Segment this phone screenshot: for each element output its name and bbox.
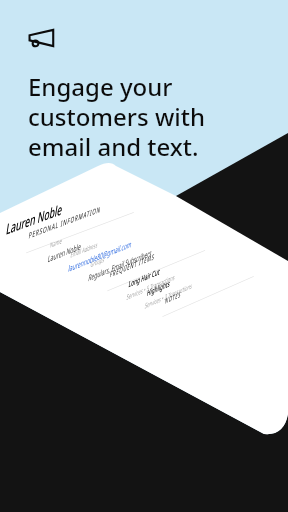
staticText: PERSONAL INFORMATION: [28, 203, 102, 241]
button[interactable]: PERSONAL INFORMATION: [26, 190, 137, 253]
staticText: Groups: [90, 254, 105, 269]
staticText: Lauren Noble: [47, 240, 82, 265]
staticText: Lauren Noble: [5, 199, 64, 239]
button[interactable]: Lauren Noble: [5, 179, 118, 239]
staticText: Email Address: [70, 239, 98, 260]
staticText: Name: [49, 235, 63, 250]
button[interactable]: NOTES: [162, 256, 257, 317]
button[interactable]: Email Address: [68, 210, 174, 275]
staticText: Engage your customers with email and tex…: [28, 70, 205, 163]
staticText: FREQUENT ITEMS: [109, 251, 156, 279]
button[interactable]: FREQUENT ITEMS: [107, 229, 209, 291]
staticText: Services • 5 Transactions: [126, 271, 176, 302]
button[interactable]: Groups: [88, 220, 192, 284]
button[interactable]: Highlights: [144, 248, 241, 310]
staticText: Regulars, Email Subscribers: [88, 246, 153, 284]
staticText: NOTES: [164, 288, 182, 305]
staticText: Highlights: [146, 277, 171, 299]
button[interactable]: Name: [47, 200, 156, 265]
staticText: Services • 3 Transactions: [144, 280, 193, 310]
staticText: laurennoble80@gmail.com: [68, 237, 133, 275]
button[interactable]: Long Hair Cut: [126, 239, 225, 302]
other: Campaign: [28, 29, 54, 47]
staticText: Long Hair Cut: [128, 265, 161, 290]
